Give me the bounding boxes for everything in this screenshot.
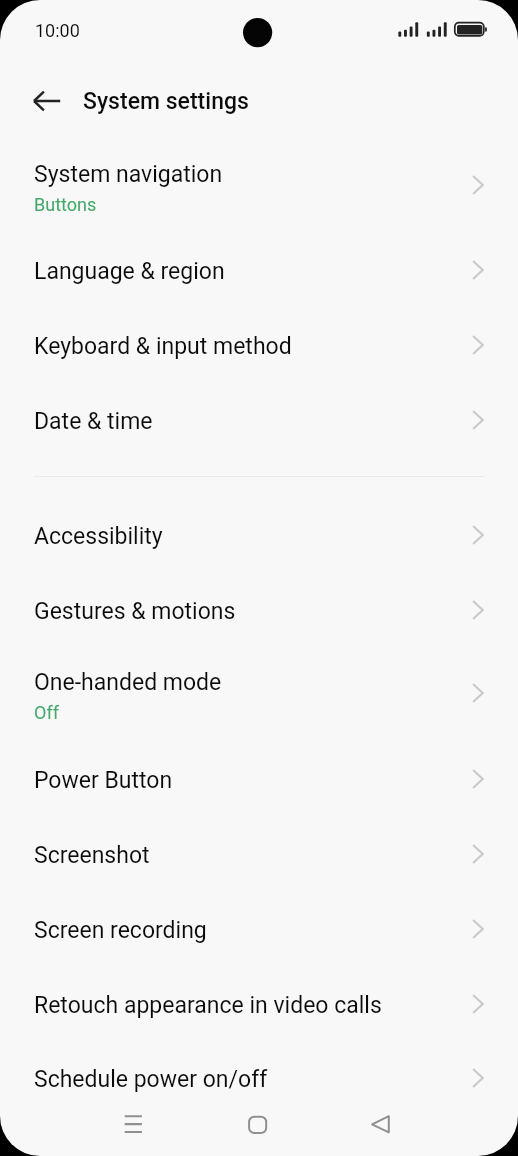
- button[interactable]: System navigation: [0, 141, 518, 231]
- staticText: Buttons: [34, 194, 97, 215]
- button[interactable]: Screenshot: [0, 818, 518, 893]
- staticText: Power Button: [34, 767, 173, 794]
- button[interactable]: Gestures & motions: [0, 570, 518, 645]
- staticText: Keyboard & input method: [34, 333, 292, 360]
- button[interactable]: Back: [357, 1100, 405, 1148]
- staticText: Off: [34, 702, 59, 723]
- staticText: One-handed mode: [34, 669, 222, 696]
- staticText: Gestures & motions: [34, 598, 236, 625]
- button[interactable]: Screen recording: [0, 893, 518, 968]
- staticText: Language & region: [34, 258, 225, 285]
- button[interactable]: Accessibility: [0, 495, 518, 570]
- button[interactable]: Recent apps: [109, 1100, 157, 1148]
- staticText: Accessibility: [34, 523, 163, 550]
- button[interactable]: Home: [233, 1100, 281, 1148]
- staticText: System navigation: [34, 161, 223, 188]
- button[interactable]: Retouch appearance in video calls: [0, 968, 518, 1043]
- staticText: 10:00: [35, 20, 80, 41]
- staticText: Schedule power on/off: [34, 1066, 268, 1093]
- button[interactable]: Power Button: [0, 743, 518, 818]
- staticText: Screenshot: [34, 842, 150, 869]
- button[interactable]: Schedule power on/off: [0, 1043, 518, 1103]
- staticText: Screen recording: [34, 917, 207, 944]
- button[interactable]: One-handed mode: [0, 645, 518, 743]
- button[interactable]: Language & region: [0, 231, 518, 306]
- button[interactable]: Date & time: [0, 381, 518, 456]
- button[interactable]: Keyboard & input method: [0, 306, 518, 381]
- button[interactable]: Back: [22, 77, 70, 125]
- staticText: Retouch appearance in video calls: [34, 992, 382, 1019]
- staticText: System settings: [83, 88, 249, 115]
- staticText: Date & time: [34, 408, 153, 435]
